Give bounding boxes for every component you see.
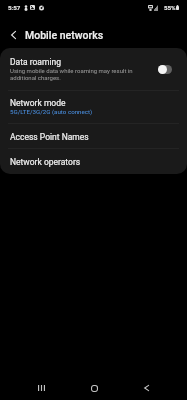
button[interactable]: Network mode xyxy=(0,90,187,123)
staticText: Network mode xyxy=(10,98,66,108)
button[interactable]: Recent apps xyxy=(27,374,55,400)
button[interactable]: Access Point Names xyxy=(0,123,187,149)
staticText: Mobile networks xyxy=(25,29,104,41)
staticText: Access Point Names xyxy=(10,132,89,142)
staticText: Using mobile data while roaming may resu… xyxy=(10,67,133,74)
staticText: 5G/LTE/3G/2G (auto connect) xyxy=(10,108,93,115)
staticText: Network operators xyxy=(10,157,81,167)
button[interactable]: Home xyxy=(80,374,108,400)
staticText: additional charges. xyxy=(10,74,61,81)
button[interactable]: Back xyxy=(132,374,160,400)
staticText: 5:57 xyxy=(8,4,21,11)
staticText: 55% xyxy=(164,4,176,11)
button[interactable]: Navigate up xyxy=(3,25,23,45)
staticText: Data roaming xyxy=(10,57,61,67)
button[interactable]: Data roaming xyxy=(0,48,187,90)
button[interactable]: Data roaming off xyxy=(158,65,172,74)
button[interactable]: Network operators xyxy=(0,148,187,174)
